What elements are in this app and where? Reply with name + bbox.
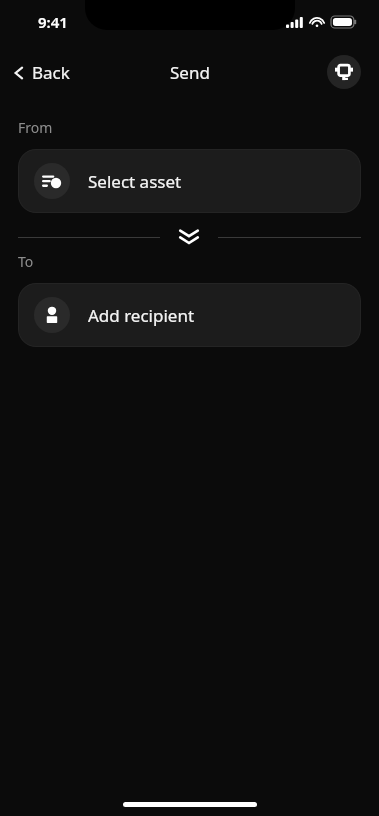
- staticText: From: [18, 118, 53, 137]
- staticText: To: [18, 252, 34, 271]
- button[interactable]: Scan QR code: [327, 55, 361, 89]
- button[interactable]: Back: [6, 55, 76, 90]
- staticText: Back: [32, 61, 70, 84]
- staticText: Send: [170, 61, 210, 84]
- staticText: Select asset: [88, 170, 182, 193]
- staticText: 9:41: [38, 12, 68, 32]
- staticText: Add recipient: [88, 304, 195, 327]
- button[interactable]: Add recipient: [18, 283, 361, 347]
- button[interactable]: Select asset: [18, 149, 361, 213]
